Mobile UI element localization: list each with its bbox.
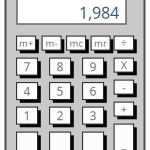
button[interactable]: Multiply: [112, 56, 135, 74]
button[interactable]: Memory clear: [65, 34, 87, 52]
button[interactable]: Add: [112, 100, 135, 118]
staticText: mr: [94, 37, 107, 49]
staticText: mc: [70, 37, 83, 49]
button[interactable]: Clear: [81, 130, 105, 150]
staticText: 6: [90, 83, 97, 99]
staticText: =: [121, 143, 127, 150]
staticText: +: [121, 102, 127, 116]
button[interactable]: 2: [48, 105, 72, 126]
button[interactable]: 5: [48, 81, 72, 101]
staticText: m-: [46, 37, 58, 49]
button[interactable]: 1: [15, 105, 39, 126]
staticText: ÷: [121, 36, 127, 50]
staticText: 4: [24, 83, 31, 99]
staticText: 8: [57, 59, 64, 74]
staticText: 2: [57, 108, 64, 123]
staticText: 1,984: [79, 2, 119, 23]
staticText: m+: [19, 37, 33, 49]
staticText: -: [122, 80, 125, 94]
button[interactable]: Memory subtract: [40, 34, 63, 52]
button[interactable]: 3: [81, 105, 105, 126]
button[interactable]: Subtract: [112, 78, 135, 96]
staticText: X: [121, 58, 127, 72]
button[interactable]: Decimal point: [48, 130, 72, 150]
button[interactable]: 4: [15, 81, 39, 101]
staticText: 3: [90, 108, 97, 123]
button[interactable]: Equals: [112, 122, 135, 150]
button[interactable]: 7: [15, 56, 39, 77]
button[interactable]: Memory add: [15, 34, 37, 52]
button[interactable]: 0: [15, 130, 39, 150]
button[interactable]: 8: [48, 56, 72, 77]
button[interactable]: Divide: [112, 34, 135, 52]
button[interactable]: 6: [81, 81, 105, 101]
staticText: 7: [24, 59, 31, 74]
staticText: 9: [90, 59, 97, 74]
button[interactable]: 9: [81, 56, 105, 77]
button[interactable]: Memory recall: [89, 34, 112, 52]
staticText: 1: [24, 108, 31, 123]
staticText: 5: [57, 83, 64, 99]
